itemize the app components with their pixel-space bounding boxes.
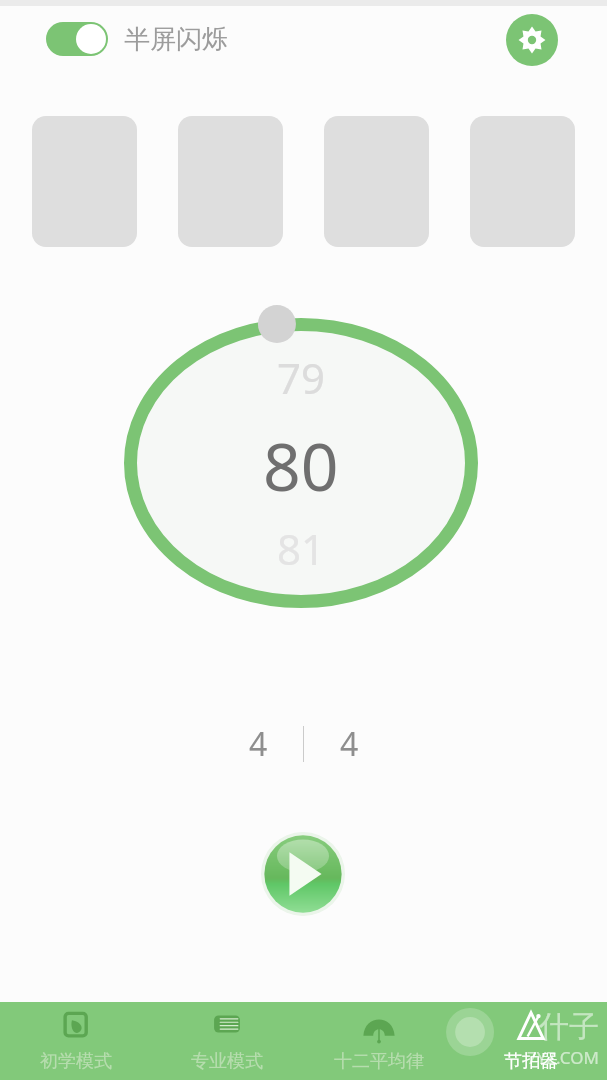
staticText: 十二平均律 — [334, 1050, 424, 1073]
staticText: 节拍器 — [504, 1050, 558, 1073]
button[interactable]: 4 — [213, 718, 303, 770]
button[interactable]: Tempo dial — [124, 306, 478, 608]
button[interactable] — [178, 116, 283, 247]
button[interactable]: Settings — [506, 14, 558, 66]
staticText: 初学模式 — [40, 1050, 112, 1073]
button[interactable] — [324, 116, 429, 247]
button[interactable]: 十二平均律 — [303, 1002, 455, 1080]
button[interactable]: 初学模式 — [0, 1002, 151, 1080]
button[interactable]: 4 — [304, 718, 394, 770]
button[interactable]: 专业模式 — [151, 1002, 303, 1080]
staticText: 7YZ.COM — [527, 1046, 599, 1069]
button[interactable]: 节拍器 — [455, 1002, 607, 1080]
staticText: 80 — [263, 420, 339, 510]
staticText: 半屏闪烁 — [124, 23, 228, 56]
staticText: 79 — [277, 349, 326, 406]
staticText: 81 — [277, 520, 326, 577]
button[interactable]: Play — [261, 832, 345, 916]
button[interactable] — [32, 116, 137, 247]
staticText: 4 — [249, 722, 268, 766]
button[interactable]: 半屏闪烁 — [46, 22, 228, 56]
staticText: 专业模式 — [191, 1050, 263, 1073]
staticText: 什子 — [539, 1008, 599, 1046]
button[interactable] — [470, 116, 575, 247]
staticText: 4 — [340, 722, 359, 766]
